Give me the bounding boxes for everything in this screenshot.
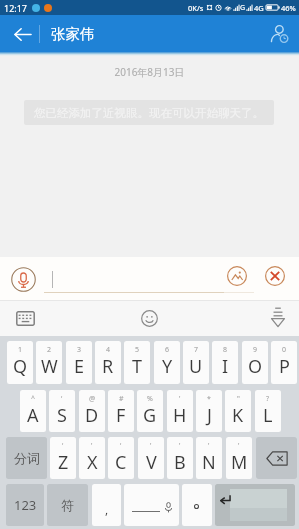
staticText: @ — [89, 394, 96, 404]
staticText: C — [115, 450, 127, 475]
button[interactable]: ^ — [20, 390, 46, 432]
button[interactable]: Close — [265, 266, 285, 286]
button[interactable]: Back — [4, 15, 41, 53]
button[interactable]: Hide keyboard — [263, 304, 292, 333]
button[interactable]: # — [108, 390, 134, 432]
button[interactable]: Space — [124, 484, 179, 526]
button[interactable]: Emoji — [135, 304, 164, 333]
staticText: Z — [58, 450, 69, 475]
staticText: I — [222, 354, 229, 379]
button[interactable]: 4 — [95, 341, 121, 384]
staticText: S — [57, 403, 67, 428]
staticText: G — [143, 403, 157, 428]
button[interactable]: ‘ — [108, 437, 134, 479]
staticText: A — [27, 403, 39, 428]
button[interactable]: Backspace — [256, 437, 297, 479]
staticText: E — [74, 354, 85, 379]
staticText: D — [85, 403, 99, 428]
button[interactable]: ’ — [226, 437, 252, 479]
staticText: 2016年8月13日 — [0, 65, 299, 79]
staticText: O — [248, 354, 263, 379]
button[interactable]: Voice message — [11, 267, 36, 292]
button[interactable]: " — [225, 390, 251, 432]
staticText: N — [202, 450, 216, 475]
button[interactable]: 5 — [124, 341, 150, 384]
staticText: Q — [13, 354, 28, 379]
button[interactable]: 符 — [47, 484, 88, 526]
button[interactable]: % — [137, 390, 163, 432]
staticText: 您已经添加了近视眼。现在可以开始聊天了。 — [34, 106, 264, 120]
button[interactable]: ‘ — [49, 390, 75, 432]
staticText: 9 — [253, 345, 258, 355]
staticText: B — [174, 450, 186, 475]
button[interactable]: 1 — [7, 341, 33, 384]
staticText: 0K/s — [188, 3, 204, 13]
staticText: X — [87, 450, 98, 475]
button[interactable]: Contact details — [262, 15, 296, 53]
button[interactable]: Enter — [215, 484, 295, 526]
button[interactable]: 8 — [212, 341, 238, 384]
button[interactable]: ‘ — [50, 437, 76, 479]
button[interactable]: 123 — [6, 484, 44, 526]
button[interactable]: ’ — [196, 437, 222, 479]
button[interactable]: 7 — [183, 341, 209, 384]
staticText: F — [116, 403, 126, 428]
staticText: M — [231, 450, 248, 475]
staticText: # — [119, 394, 124, 404]
staticText: K — [232, 403, 244, 428]
button[interactable]: 0 — [271, 341, 297, 384]
staticText: , — [105, 501, 109, 517]
staticText: Y — [162, 354, 173, 379]
staticText: 4G — [254, 3, 264, 13]
staticText: G — [240, 3, 246, 13]
staticText: 2 — [47, 345, 52, 355]
staticText: ‘ — [62, 441, 64, 451]
button[interactable]: , — [92, 484, 121, 526]
button[interactable]: ’ — [167, 390, 193, 432]
staticText: ’ — [208, 441, 210, 451]
staticText: ‘ — [61, 394, 63, 404]
staticText: P — [279, 354, 290, 379]
button[interactable]: 分词 — [6, 437, 47, 479]
staticText: " — [237, 394, 240, 404]
staticText: % — [147, 394, 153, 404]
button[interactable]: @ — [79, 390, 105, 432]
staticText: 46% — [281, 3, 296, 13]
staticText: ^ — [31, 394, 36, 404]
button[interactable]: Period — [182, 484, 212, 526]
button[interactable]: ’ — [167, 437, 193, 479]
button[interactable]: 2 — [36, 341, 62, 384]
button[interactable]: 6 — [154, 341, 180, 384]
button[interactable]: ? — [255, 390, 281, 432]
staticText: 5 — [135, 345, 140, 355]
staticText: 张家伟 — [51, 25, 95, 43]
staticText: 8 — [223, 345, 228, 355]
staticText: 1 — [18, 345, 23, 355]
staticText: * — [207, 394, 211, 404]
button[interactable]: 9 — [242, 341, 268, 384]
button[interactable]: 3 — [66, 341, 92, 384]
button[interactable]: ’ — [79, 437, 105, 479]
staticText: J — [207, 403, 212, 428]
button[interactable]: * — [196, 390, 222, 432]
staticText: 123 — [14, 496, 37, 514]
staticText: ’ — [179, 394, 181, 404]
staticText: ’ — [150, 441, 152, 451]
staticText: ’ — [238, 441, 240, 451]
button[interactable]: Switch keyboard — [11, 304, 40, 333]
button[interactable]: ’ — [138, 437, 164, 479]
staticText: 0 — [282, 345, 287, 355]
staticText: 符 — [61, 497, 74, 513]
staticText: ’ — [179, 441, 181, 451]
staticText: U — [189, 354, 203, 379]
staticText: 7 — [194, 345, 199, 355]
staticText: H — [173, 403, 187, 428]
staticText: ‘ — [120, 441, 122, 451]
staticText: T — [132, 354, 143, 379]
staticText: 3 — [77, 345, 82, 355]
staticText: 4 — [106, 345, 111, 355]
staticText: V — [146, 450, 157, 475]
staticText: R — [102, 354, 114, 379]
button[interactable]: Send picture — [227, 266, 247, 286]
staticText: ? — [266, 394, 270, 404]
